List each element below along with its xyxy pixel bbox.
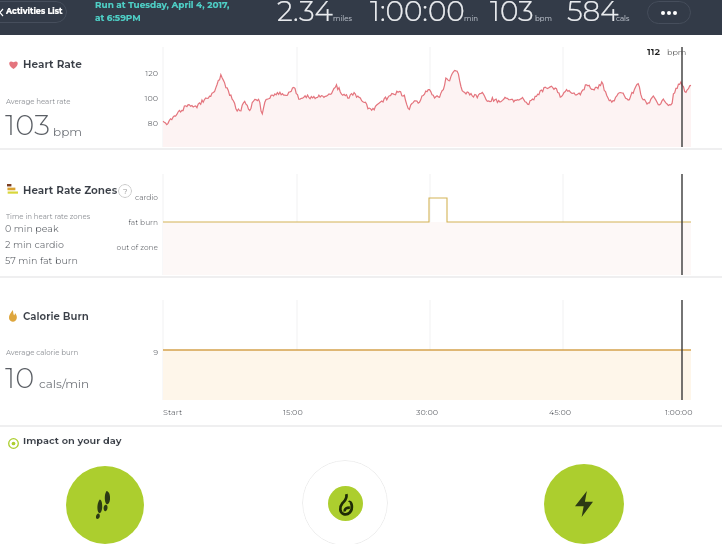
staticText: bpm (535, 14, 552, 23)
staticText: 9 (98, 347, 158, 357)
staticText: miles (333, 14, 352, 23)
button[interactable]: Help about heart rate zones (118, 184, 132, 198)
staticText: 103 (490, 0, 534, 28)
staticText: at 6:59PM (95, 12, 141, 23)
staticText: cals (616, 14, 630, 23)
staticText: Heart Rate Zones (23, 184, 118, 197)
staticText: 45:00 (549, 407, 572, 417)
staticText: Heart Rate (23, 58, 82, 71)
staticText: 584 (567, 0, 619, 28)
staticText: 57 min fat burn (5, 255, 78, 267)
staticText: bpm (667, 47, 687, 57)
staticText: min (464, 14, 479, 23)
staticText: 2 min cardio (5, 239, 65, 251)
staticText: 10 (5, 360, 35, 395)
staticText: Start (163, 407, 183, 417)
staticText: 0 min peak (5, 223, 59, 235)
staticText: 2.34 (277, 0, 333, 28)
staticText: 1:00:00 (370, 0, 465, 28)
staticText: ? (123, 186, 128, 196)
staticText: fat burn (98, 218, 158, 227)
staticText: cardio (98, 193, 158, 202)
button[interactable]: More options (647, 1, 691, 24)
staticText: Time in heart rate zones (6, 212, 91, 221)
staticText: 30:00 (416, 407, 439, 417)
staticText: Impact on your day (23, 435, 122, 447)
button[interactable]: Activities List (0, 1, 67, 23)
staticText: 80 (98, 118, 158, 128)
button[interactable]: Steps (66, 466, 144, 544)
staticText: 103 (5, 107, 51, 142)
staticText: Run at Tuesday, April 4, 2017, (95, 0, 230, 10)
staticText: cals/min (39, 376, 90, 391)
staticText: Calorie Burn (23, 310, 89, 322)
button[interactable]: Calories burned (302, 460, 388, 544)
staticText: 120 (98, 68, 158, 78)
staticText: Average calorie burn (6, 348, 79, 357)
staticText: 100 (98, 93, 158, 103)
staticText: 112 (647, 46, 661, 58)
staticText: 15:00 (283, 407, 303, 417)
staticText: 1:00:00 (665, 407, 693, 417)
staticText: Average heart rate (6, 97, 71, 106)
staticText: out of zone (98, 243, 158, 252)
staticText: Activities List (6, 6, 63, 16)
button[interactable]: Active minutes (544, 464, 624, 544)
staticText: bpm (53, 124, 83, 139)
